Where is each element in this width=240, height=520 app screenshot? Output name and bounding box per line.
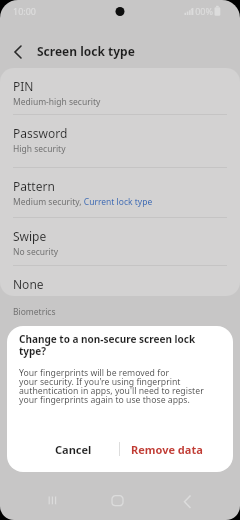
staticText: Pattern [13,178,55,194]
staticText: Biometrics [13,306,56,318]
staticText: Remove data [131,442,203,457]
staticText: 10:00 [13,5,37,17]
staticText: Password [13,125,68,141]
button[interactable]: Cancel [27,429,119,469]
button[interactable] [0,30,34,64]
staticText: None [13,276,44,292]
staticText: High security [13,143,66,155]
staticText: Swipe [13,228,47,244]
staticText: Change to a non-secure screen lock type? [19,332,196,358]
button[interactable]: None [0,266,240,296]
staticText: Your fingerprints will be removed for yo… [19,367,204,406]
button[interactable]: Remove data [120,429,213,469]
button[interactable]: Password [0,115,240,168]
staticText: Medium-high security [13,96,101,108]
button[interactable]: Swipe [0,218,240,266]
staticText: Screen lock type [37,43,135,59]
staticText: Cancel [55,442,92,457]
staticText: 100% [190,5,213,17]
staticText: Medium security, Current lock type [13,196,153,208]
button[interactable]: PIN [0,68,240,115]
button[interactable]: Pattern [0,168,240,218]
staticText: PIN [13,78,34,94]
staticText: No security [13,246,59,258]
